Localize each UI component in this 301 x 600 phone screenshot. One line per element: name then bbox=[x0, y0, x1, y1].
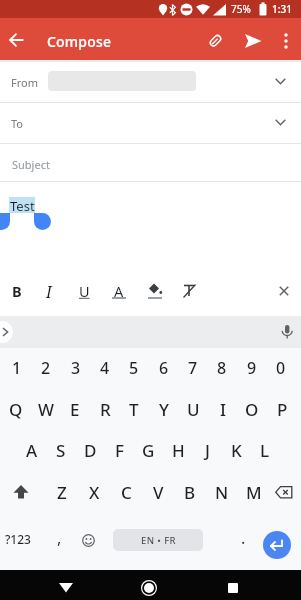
button[interactable] bbox=[228, 583, 238, 593]
staticText: T bbox=[129, 398, 139, 421]
button[interactable]: Z bbox=[48, 475, 76, 509]
staticText: F bbox=[115, 439, 124, 462]
button[interactable]: 6 bbox=[150, 351, 178, 385]
button[interactable]: 9 bbox=[238, 351, 266, 385]
staticText: Y bbox=[159, 398, 169, 421]
button[interactable]: 0 bbox=[267, 351, 295, 385]
button[interactable]: I bbox=[24, 279, 74, 303]
button[interactable]: C bbox=[112, 475, 140, 509]
staticText: I bbox=[46, 281, 52, 302]
staticText: 8 bbox=[217, 357, 227, 379]
staticText: Subject bbox=[12, 157, 50, 172]
staticText: Compose bbox=[47, 32, 112, 51]
button[interactable] bbox=[13, 485, 29, 499]
button[interactable]: M bbox=[240, 475, 268, 509]
button[interactable]: F bbox=[105, 433, 133, 467]
staticText: 75% bbox=[231, 2, 251, 16]
button[interactable] bbox=[82, 534, 95, 547]
button[interactable]: 5 bbox=[120, 351, 148, 385]
button[interactable]: G bbox=[134, 433, 162, 467]
button[interactable]: S bbox=[47, 433, 75, 467]
button[interactable]: Y bbox=[150, 392, 178, 426]
staticText: S bbox=[56, 439, 66, 462]
button[interactable]: R bbox=[91, 392, 119, 426]
staticText: 2 bbox=[41, 357, 51, 379]
button[interactable] bbox=[281, 325, 293, 340]
button[interactable] bbox=[0, 321, 13, 343]
button[interactable] bbox=[206, 32, 224, 50]
button[interactable]: T bbox=[120, 392, 148, 426]
button[interactable] bbox=[0, 144, 301, 181]
button[interactable]: A bbox=[18, 433, 46, 467]
staticText: 7 bbox=[188, 357, 198, 379]
button[interactable] bbox=[9, 33, 24, 47]
staticText: B bbox=[184, 481, 196, 504]
button[interactable]: J bbox=[193, 433, 221, 467]
staticText: G bbox=[142, 439, 155, 462]
button[interactable]: H bbox=[164, 433, 192, 467]
button[interactable]: E bbox=[61, 392, 89, 426]
button[interactable]: K bbox=[222, 433, 250, 467]
button[interactable]: 4 bbox=[91, 351, 119, 385]
button[interactable]: 3 bbox=[62, 351, 90, 385]
button[interactable]: V bbox=[144, 475, 172, 509]
staticText: U bbox=[187, 398, 200, 421]
button[interactable]: D bbox=[76, 433, 104, 467]
staticText: 1 bbox=[12, 357, 22, 379]
button[interactable]: 7 bbox=[179, 351, 207, 385]
staticText: U bbox=[79, 281, 90, 301]
button[interactable]: I bbox=[209, 392, 237, 426]
button[interactable] bbox=[245, 34, 262, 48]
staticText: I bbox=[220, 398, 227, 421]
staticText: K bbox=[231, 439, 242, 462]
button[interactable]: 1 bbox=[3, 351, 31, 385]
button[interactable]: N bbox=[208, 475, 236, 509]
button[interactable]: 2 bbox=[32, 351, 60, 385]
staticText: W bbox=[38, 398, 54, 421]
button[interactable]: U bbox=[59, 279, 109, 303]
button[interactable] bbox=[263, 531, 291, 559]
button[interactable]: . bbox=[233, 526, 253, 550]
button[interactable] bbox=[141, 580, 157, 596]
button[interactable] bbox=[182, 283, 198, 299]
staticText: M bbox=[246, 481, 262, 504]
button[interactable]: W bbox=[32, 392, 60, 426]
button[interactable] bbox=[283, 33, 289, 49]
button[interactable]: X bbox=[80, 475, 108, 509]
staticText: Q bbox=[9, 398, 23, 421]
staticText: A bbox=[114, 281, 124, 301]
staticText: Test bbox=[10, 197, 35, 213]
button[interactable]: , bbox=[49, 526, 69, 550]
staticText: 6 bbox=[159, 357, 169, 379]
staticText: D bbox=[84, 439, 97, 462]
button[interactable] bbox=[0, 103, 301, 143]
button[interactable] bbox=[275, 78, 286, 85]
button[interactable]: ?123 bbox=[1, 527, 35, 551]
staticText: From bbox=[11, 75, 38, 90]
button[interactable] bbox=[147, 282, 163, 295]
staticText: EN • FR bbox=[141, 534, 176, 547]
staticText: 5 bbox=[129, 357, 139, 379]
staticText: 9 bbox=[247, 357, 257, 379]
button[interactable] bbox=[59, 583, 73, 593]
staticText: 3 bbox=[71, 357, 81, 379]
button[interactable] bbox=[275, 119, 286, 126]
staticText: X bbox=[89, 481, 100, 504]
staticText: O bbox=[245, 398, 259, 421]
staticText: C bbox=[121, 481, 132, 504]
button[interactable]: EN • FR bbox=[113, 529, 203, 551]
button[interactable]: P bbox=[268, 392, 296, 426]
button[interactable]: A bbox=[94, 279, 144, 303]
button[interactable]: O bbox=[238, 392, 266, 426]
button[interactable]: B bbox=[176, 475, 204, 509]
button[interactable]: Q bbox=[2, 392, 30, 426]
staticText: V bbox=[153, 481, 164, 504]
button[interactable]: 8 bbox=[208, 351, 236, 385]
button[interactable] bbox=[275, 486, 293, 499]
staticText: A bbox=[26, 439, 38, 462]
button[interactable] bbox=[0, 62, 301, 102]
button[interactable]: L bbox=[251, 433, 279, 467]
button[interactable] bbox=[279, 286, 289, 296]
button[interactable]: B bbox=[0, 279, 42, 303]
button[interactable]: U bbox=[179, 392, 207, 426]
